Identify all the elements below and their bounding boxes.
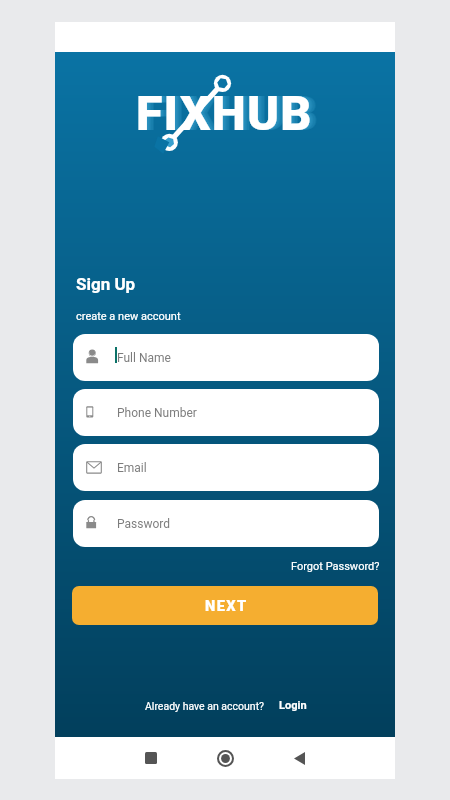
staticText: Password <box>117 517 171 531</box>
button[interactable]: Full Name <box>73 334 379 381</box>
button[interactable]: Password <box>73 500 379 547</box>
staticText: FIXHUB <box>138 85 315 142</box>
staticText: Email <box>117 461 147 475</box>
staticText: Already have an account? <box>145 700 265 712</box>
staticText: Phone Number <box>117 406 197 420</box>
staticText: Forgot Password? <box>291 560 380 573</box>
button[interactable]: Phone Number <box>73 389 379 436</box>
staticText: FIXHUB <box>142 85 319 142</box>
staticText: FIXHUB <box>139 85 316 142</box>
button[interactable]: Back <box>279 738 319 778</box>
button[interactable]: Email <box>73 444 379 491</box>
staticText: FIXHUB <box>136 85 313 142</box>
staticText: Full Name <box>117 351 171 365</box>
button[interactable]: Forgot Password? <box>291 560 380 573</box>
staticText: create a new account <box>76 310 181 323</box>
staticText: Login <box>279 699 307 712</box>
staticText: NEXT <box>205 597 248 614</box>
staticText: FIXHUB <box>140 85 317 142</box>
button[interactable]: Home <box>205 738 245 778</box>
button[interactable]: Login <box>279 699 307 712</box>
staticText: FIXHUB <box>137 85 314 142</box>
button[interactable]: Recents <box>131 738 171 778</box>
staticText: FIXHUB <box>143 85 320 142</box>
staticText: Sign Up <box>76 274 136 294</box>
button[interactable]: NEXT <box>72 586 378 625</box>
